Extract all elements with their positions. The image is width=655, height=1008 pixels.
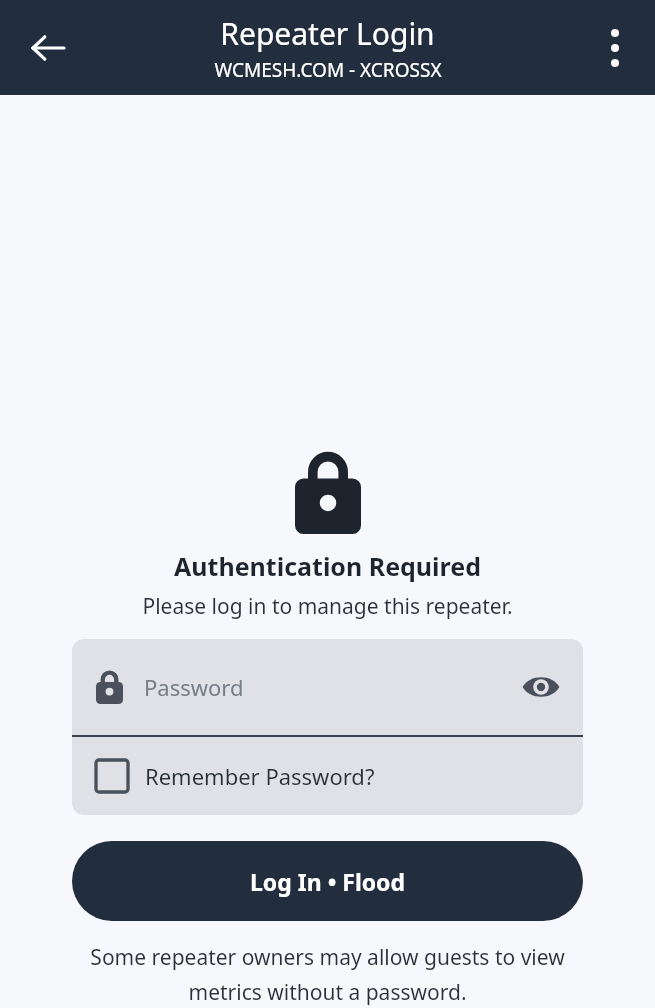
- staticText: WCMESH.COM - XCROSSX: [214, 57, 442, 83]
- button[interactable]: More options: [589, 22, 641, 74]
- staticText: Please log in to manage this repeater.: [142, 592, 513, 621]
- staticText: Some repeater owners may allow guests to…: [60, 943, 595, 1006]
- button[interactable]: Remember Password?: [72, 737, 583, 815]
- staticText: Repeater Login: [220, 13, 435, 54]
- button[interactable]: Log In • Flood: [72, 841, 583, 921]
- staticText: Password: [144, 672, 244, 702]
- button[interactable]: Password: [72, 639, 583, 735]
- button[interactable]: Back: [20, 20, 76, 76]
- staticText: Remember Password?: [145, 761, 375, 791]
- staticText: Authentication Required: [174, 549, 481, 583]
- button[interactable]: Show password: [519, 665, 563, 709]
- staticText: Log In • Flood: [250, 866, 406, 897]
